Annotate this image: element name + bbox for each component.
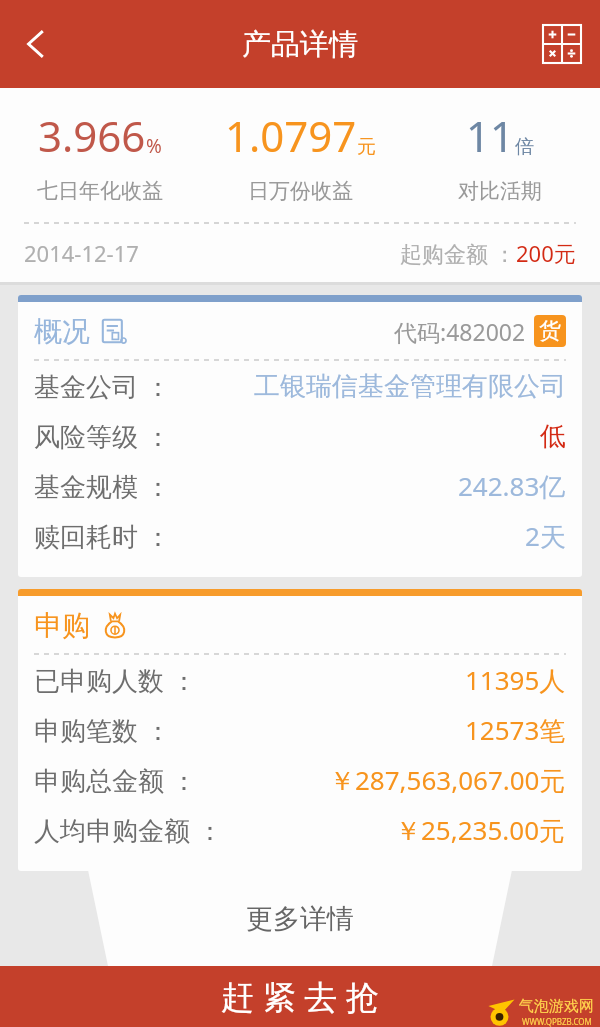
staticText: % — [146, 133, 162, 159]
staticText: 基金规模 ： — [34, 468, 171, 504]
staticText: 12573笔 — [465, 712, 566, 748]
staticText: 基金公司 ： — [34, 368, 171, 404]
staticText: 更多详情 — [246, 902, 354, 936]
staticText: 七日年化收益 — [37, 178, 163, 204]
staticText: 对比活期 — [458, 178, 542, 204]
staticText: 气泡游戏网 — [519, 997, 594, 1016]
staticText: 已申购人数 ： — [34, 662, 197, 698]
button[interactable]: Back — [8, 16, 64, 72]
button[interactable]: 风险等级 ： — [34, 411, 566, 461]
staticText: 申购笔数 ： — [34, 712, 171, 748]
button[interactable]: 基金公司 ： — [34, 361, 566, 411]
staticText: 11395人 — [465, 662, 566, 698]
button[interactable]: 申购笔数 ： — [34, 705, 566, 755]
staticText: 申购 — [34, 608, 90, 643]
staticText: 赶 紧 去 抢 — [221, 974, 379, 1019]
staticText: 11 — [466, 107, 515, 164]
staticText: 赎回耗时 ： — [34, 518, 171, 554]
staticText: 产品详情 — [242, 26, 358, 63]
button[interactable]: 申购总金额 ： — [34, 755, 566, 805]
button[interactable]: 基金规模 ： — [34, 461, 566, 511]
button[interactable]: 人均申购金额 ： — [34, 805, 566, 855]
staticText: 概况 — [34, 314, 90, 349]
staticText: 低 — [540, 420, 566, 453]
button[interactable]: 更多详情 — [0, 871, 600, 966]
staticText: 人均申购金额 ： — [34, 812, 223, 848]
staticText: ￥25,235.00元 — [395, 812, 566, 848]
staticText: 2天 — [525, 518, 566, 554]
button[interactable]: Calculator — [534, 16, 590, 72]
staticText: 元 — [357, 135, 376, 159]
staticText: 200元 — [516, 238, 576, 268]
staticText: 日万份收益 — [248, 178, 353, 204]
staticText: 1.0797 — [225, 107, 357, 164]
button[interactable]: 已申购人数 ： — [34, 655, 566, 705]
button[interactable]: 赎回耗时 ： — [34, 511, 566, 561]
staticText: ￥287,563,067.00元 — [329, 762, 566, 798]
staticText: 3.966 — [38, 107, 146, 164]
staticText: 风险等级 ： — [34, 418, 171, 454]
button[interactable]: 赶 紧 去 抢 — [0, 966, 600, 1027]
staticText: 申购总金额 ： — [34, 762, 197, 798]
staticText: 起购金额 ： — [400, 238, 516, 268]
staticText: 242.83亿 — [458, 468, 566, 504]
staticText: WWW.QPBZB.COM — [522, 1016, 592, 1027]
staticText: 倍 — [515, 135, 534, 159]
staticText: 货 — [539, 317, 561, 345]
staticText: 代码:482002 — [394, 316, 526, 347]
staticText: 工银瑞信基金管理有限公司 — [254, 370, 566, 403]
staticText: 2014-12-17 — [24, 238, 139, 268]
